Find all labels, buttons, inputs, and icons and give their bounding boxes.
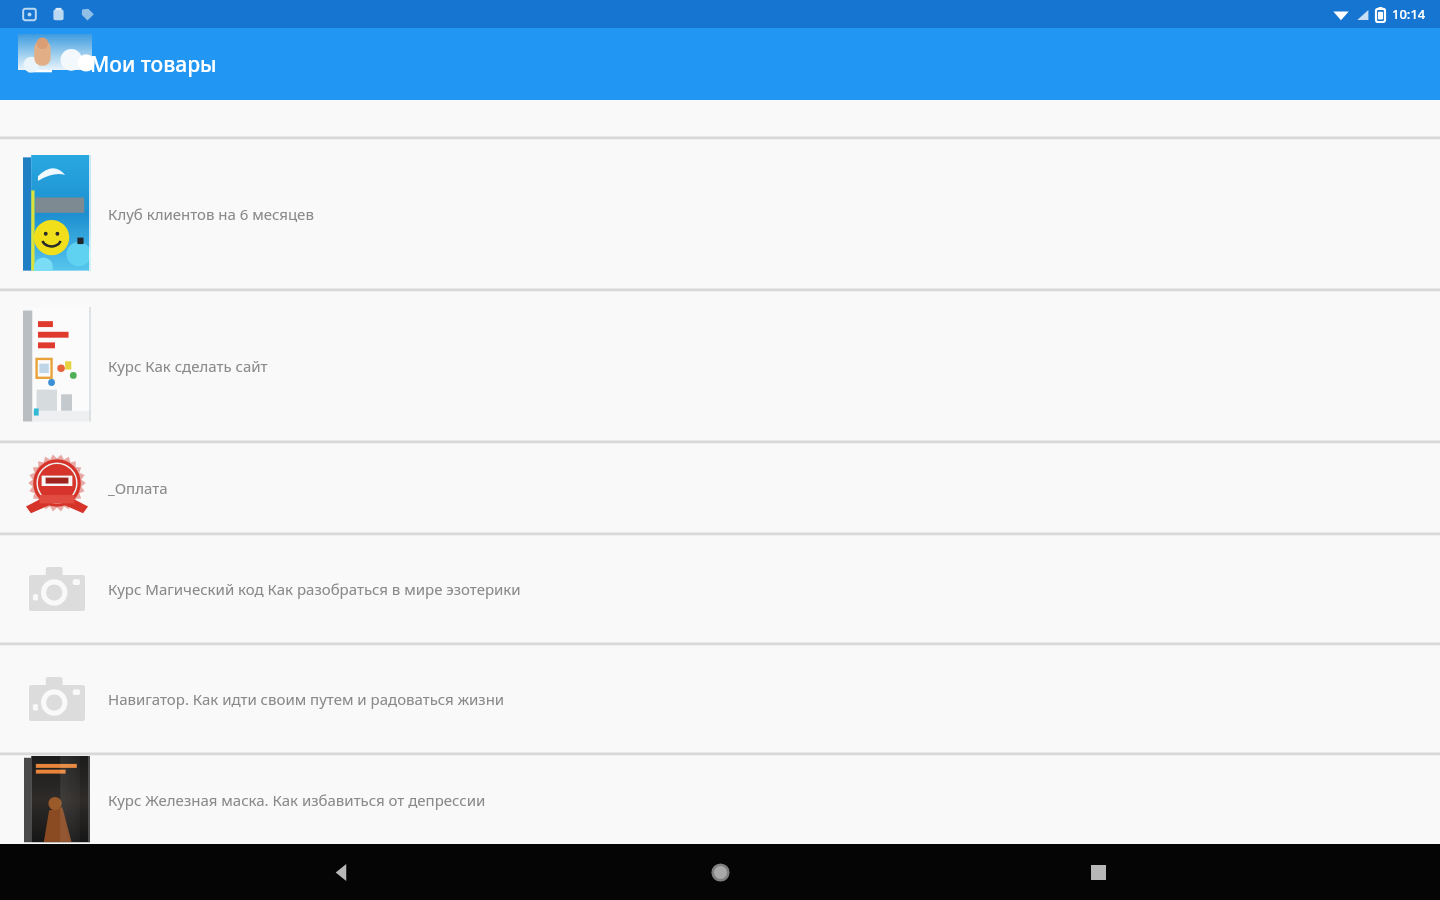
- staticText: Курс Как сделать сайт: [108, 356, 268, 376]
- staticText: _Оплата: [108, 478, 168, 498]
- button[interactable]: Back: [306, 844, 378, 900]
- staticText: Курс Железная маска. Как избавиться от д…: [108, 790, 486, 810]
- button[interactable]: Open navigation menu: [16, 40, 64, 88]
- button[interactable]: Курс Железная маска. Как избавиться от д…: [0, 756, 1440, 844]
- staticText: Курс Магический код Как разобраться в ми…: [108, 579, 521, 599]
- button[interactable]: Recent apps: [1062, 844, 1134, 900]
- staticText: Мои товары: [90, 50, 217, 79]
- staticText: Клуб клиентов на 6 месяцев: [108, 204, 314, 224]
- staticText: Навигатор. Как идти своим путем и радова…: [108, 689, 505, 709]
- button[interactable]: Курс Магический код Как разобраться в ми…: [0, 536, 1440, 642]
- button[interactable]: Home: [684, 844, 756, 900]
- button[interactable]: Курс Как сделать сайт: [0, 292, 1440, 440]
- staticText: 10:14: [1392, 5, 1426, 23]
- button[interactable]: _Оплата: [0, 444, 1440, 532]
- button[interactable]: Навигатор. Как идти своим путем и радова…: [0, 646, 1440, 752]
- button[interactable]: Клуб клиентов на 6 месяцев: [0, 140, 1440, 288]
